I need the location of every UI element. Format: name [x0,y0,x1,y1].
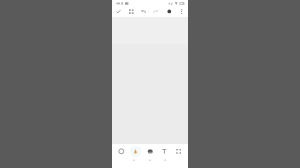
button[interactable]: Text tool [156,137,170,154]
button[interactable]: Colour [169,7,182,17]
button[interactable]: Pen tool [128,137,142,154]
button[interactable]: Crop [170,137,184,154]
button[interactable]: More options [182,7,188,17]
button[interactable]: Shape tool [114,137,128,154]
button[interactable]: Redo [156,7,169,17]
button[interactable]: Transform [132,7,144,17]
button[interactable]: Done [119,7,132,17]
button[interactable]: Eraser [142,137,156,154]
button[interactable]: Undo [144,7,156,17]
